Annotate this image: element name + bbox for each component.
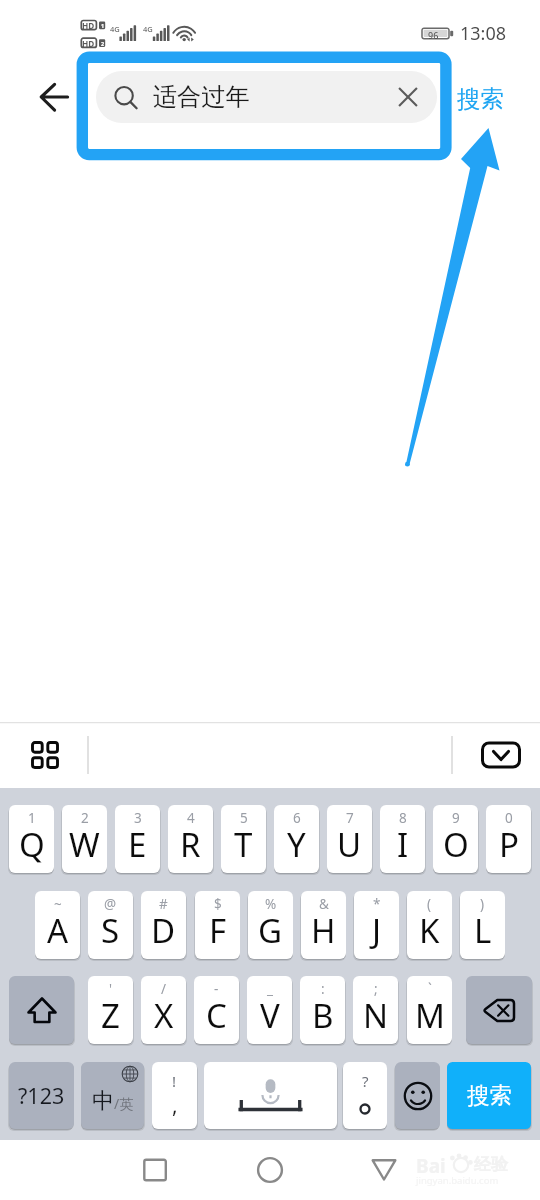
button[interactable]: Exclamation and comma [152,1062,197,1129]
staticText: X [154,993,174,1038]
staticText: - [214,980,219,998]
staticText: jingyan.baidu.com [416,1174,499,1187]
button[interactable]: 9 [433,805,478,873]
button[interactable]: 2 [62,805,107,873]
button[interactable]: Keyboard layout [23,733,67,777]
button[interactable]: ) [460,891,505,959]
button[interactable]: Emoji [395,1062,440,1129]
staticText: HD [82,38,95,49]
staticText: _ [267,980,273,998]
staticText: C [206,993,227,1038]
staticText: Bai [416,1153,446,1179]
staticText: F [209,908,227,953]
button[interactable]: : [300,976,345,1044]
staticText: # [159,895,168,913]
staticText: D [151,908,176,953]
button[interactable]: % [248,891,293,959]
button[interactable]: & [301,891,346,959]
staticText: & [319,895,329,913]
staticText: 0 [505,809,513,827]
button[interactable]: 适合过年 [96,71,437,123]
staticText: I [397,822,409,867]
staticText: HD [82,20,95,31]
button[interactable]: Home [250,1150,290,1190]
button[interactable]: Search [447,1062,531,1129]
staticText: B [312,993,334,1038]
staticText: 搜索 [467,1081,512,1109]
staticText: 7 [346,809,354,827]
button[interactable]: Hide keyboard [479,733,523,777]
staticText: /英 [114,1094,134,1113]
staticText: % [265,895,277,913]
staticText: J [372,908,382,953]
staticText: R [180,822,201,867]
staticText: ?123 [18,1081,65,1110]
staticText: G [258,908,283,953]
staticText: N [363,993,389,1038]
staticText: Z [101,993,120,1038]
button[interactable]: - [194,976,239,1044]
staticText: 4G [110,24,120,34]
staticText: L [474,908,492,953]
button[interactable]: 3 [115,805,160,873]
staticText: 4 [187,809,195,827]
button[interactable]: / [141,976,186,1044]
button[interactable]: 4 [168,805,213,873]
button[interactable]: Shift [9,976,74,1044]
button[interactable]: $ [195,891,240,959]
button[interactable]: Question mark and period [343,1062,387,1129]
button[interactable]: Clear text [384,73,432,121]
staticText: @ [104,895,117,913]
button[interactable]: 7 [327,805,372,873]
staticText: E [128,822,147,867]
button[interactable]: * [354,891,399,959]
staticText: Q [19,822,45,867]
button[interactable]: ( [407,891,452,959]
staticText: V [260,993,280,1038]
staticText: S [101,908,120,953]
button[interactable]: ; [353,976,398,1044]
staticText: / [161,980,167,998]
button[interactable]: Space [204,1062,337,1129]
staticText: ( [427,895,432,913]
staticText: Y [287,822,306,867]
staticText: P [499,822,519,867]
staticText: ` [428,980,432,998]
button[interactable]: 搜索 [450,78,512,118]
button[interactable]: Backspace [466,976,532,1044]
button[interactable]: Recent apps [135,1150,175,1190]
button[interactable]: ' [88,976,133,1044]
button[interactable]: _ [247,976,292,1044]
staticText: U [337,822,362,867]
button[interactable]: Switch Chinese English [81,1062,144,1129]
staticText: 96 [428,29,439,41]
staticText: : [321,980,325,998]
button[interactable]: Back [22,75,70,123]
button[interactable]: ~ [35,891,80,959]
button[interactable]: 8 [380,805,425,873]
staticText: 2 [101,40,105,47]
button[interactable]: 0 [486,805,531,873]
staticText: 6 [293,809,301,827]
button[interactable]: 6 [274,805,319,873]
staticText: 2 [81,809,89,827]
staticText: 适合过年 [153,82,250,112]
button[interactable]: Back [364,1150,404,1190]
button[interactable]: # [141,891,186,959]
staticText: ; [374,980,378,998]
staticText: M [415,993,445,1038]
button[interactable]: 1 [9,805,54,873]
staticText: A [47,908,69,953]
button[interactable]: 5 [221,805,266,873]
staticText: $ [214,895,222,913]
staticText: 中 [92,1087,114,1115]
staticText: 经验 [474,1154,508,1175]
button[interactable]: ` [407,976,452,1044]
staticText: * [373,895,381,913]
button[interactable]: Symbols and numbers [9,1062,74,1129]
staticText: 1 [28,809,36,827]
staticText: 8 [399,809,407,827]
staticText: O [443,822,469,867]
staticText: 3 [134,809,142,827]
button[interactable]: @ [88,891,133,959]
